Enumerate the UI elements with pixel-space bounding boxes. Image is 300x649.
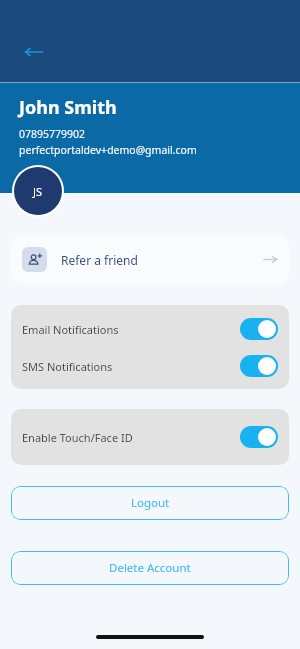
staticText: Enable Touch/Face ID — [22, 430, 133, 445]
staticText: Email Notifications — [22, 322, 119, 337]
staticText: perfectportaldev+demo@gmail.com — [19, 143, 197, 157]
button[interactable]: Toggle — [240, 318, 278, 340]
staticText: JS — [33, 184, 43, 199]
button[interactable]: Toggle — [240, 355, 278, 377]
button[interactable]: Delete Account — [11, 551, 289, 585]
button[interactable]: Enable Touch/Face ID — [22, 425, 278, 449]
button[interactable]: SMS Notifications — [22, 354, 278, 378]
staticText: Delete Account — [109, 560, 191, 576]
button[interactable]: Back — [20, 38, 48, 66]
staticText: 07895779902 — [19, 127, 86, 141]
staticText: SMS Notifications — [22, 359, 113, 374]
button[interactable]: Toggle — [240, 426, 278, 448]
button[interactable]: Profile avatar — [14, 167, 62, 215]
staticText: Refer a friend — [61, 252, 138, 268]
button[interactable]: Refer a friend — [11, 235, 289, 284]
staticText: Logout — [131, 495, 170, 511]
staticText: John Smith — [19, 95, 117, 120]
button[interactable]: Logout — [11, 486, 289, 520]
button[interactable]: Email Notifications — [22, 317, 278, 341]
